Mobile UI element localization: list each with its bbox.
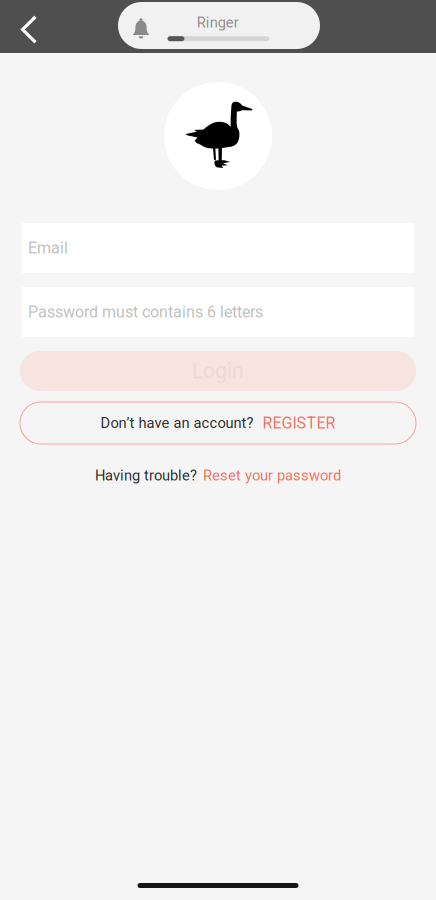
button[interactable]: Having trouble? [95, 467, 341, 484]
staticText: Login [192, 358, 244, 383]
staticText: Email [28, 239, 68, 257]
button[interactable]: Back [0, 0, 50, 52]
staticText: Password must contains 6 letters [28, 303, 263, 321]
staticText: REGISTER [262, 414, 335, 432]
staticText: Reset your password [203, 467, 341, 484]
staticText: Having trouble? [95, 467, 197, 484]
staticText: Don’t have an account? [100, 414, 253, 432]
staticText: Ringer [197, 14, 239, 31]
button[interactable]: Don’t have an account? [20, 402, 416, 444]
button[interactable]: Login [20, 351, 416, 391]
